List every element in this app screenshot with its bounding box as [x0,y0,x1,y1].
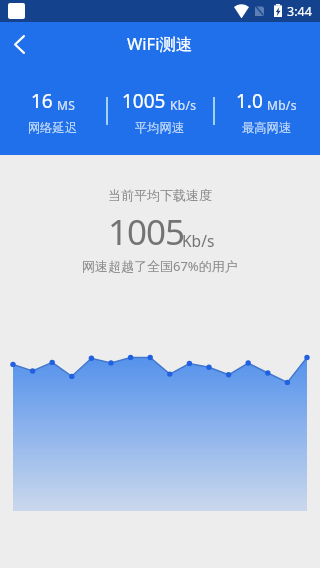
staticText: 16 [31,88,53,114]
staticText: 网速超越了全国67%的用户 [82,257,238,275]
staticText: 平均网速 [135,120,185,135]
staticText: 1005 [122,88,166,114]
staticText: WiFi测速 [127,32,193,55]
staticText: 1.0 [236,88,263,114]
staticText: Kb/s [170,97,197,113]
button[interactable]: Back [0,22,44,66]
staticText: Kb/s [182,230,215,251]
staticText: MS [57,97,76,113]
staticText: 网络延迟 [28,120,78,135]
staticText: 1005 [108,208,185,256]
button[interactable]: 1005 [106,66,213,135]
button[interactable]: 16 [0,66,106,135]
staticText: 最高网速 [242,120,292,135]
staticText: 当前平均下载速度 [108,187,212,203]
staticText: 3:44 [287,3,312,20]
staticText: Mb/s [267,97,297,113]
button[interactable]: 1.0 [213,66,320,135]
